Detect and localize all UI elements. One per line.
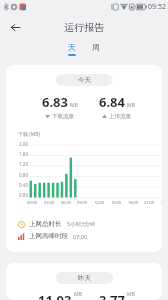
staticText: 09:00 [74,200,90,205]
button[interactable]: Back [7,19,23,35]
staticText: 2.00 [6,141,28,147]
staticText: 天 [68,42,76,52]
staticText: 11.03 [38,291,72,300]
staticText: 24:00 [158,200,162,205]
staticText: 21:00 [141,200,157,205]
staticText: MB [127,102,135,109]
staticText: MB [70,102,78,109]
staticText: 运行报告 [64,21,104,34]
staticText: 今天 [78,76,91,84]
staticText: 00:00 [24,200,40,205]
staticText: MB [74,291,82,298]
staticText: 09:52 [148,2,166,12]
staticText: 07:00 [73,233,88,240]
staticText: 下载流量 [52,113,74,120]
button[interactable]: 周 [88,42,104,56]
staticText: 15:00 [108,200,124,205]
staticText: 0.40 [6,182,28,188]
staticText: 0.80 [6,172,28,178]
staticText: 1.60 [6,151,28,157]
staticText: 03:00 [41,200,57,205]
staticText: 上网总时长 [29,220,62,228]
staticText: 下载 (MB) [18,131,41,138]
staticText: 3.77 [99,291,125,300]
staticText: 12:00 [91,200,107,205]
staticText: 0.00 [6,192,28,198]
button[interactable]: 天 [64,42,80,56]
button[interactable]: 上网高峰时段 [6,232,162,240]
staticText: 周 [92,42,100,52]
staticText: 上网高峰时段 [29,232,68,240]
staticText: 1.20 [6,161,28,167]
staticText: 6.84 [99,93,125,111]
staticText: MB [127,291,135,298]
staticText: 6.83 [42,93,68,111]
staticText: 18:00 [125,200,141,205]
button[interactable]: 上网总时长 [6,220,162,228]
staticText: 06:00 [58,200,74,205]
staticText: 5小时3分钟 [67,220,96,228]
staticText: 上传流量 [109,113,131,120]
staticText: 昨天 [78,274,91,282]
